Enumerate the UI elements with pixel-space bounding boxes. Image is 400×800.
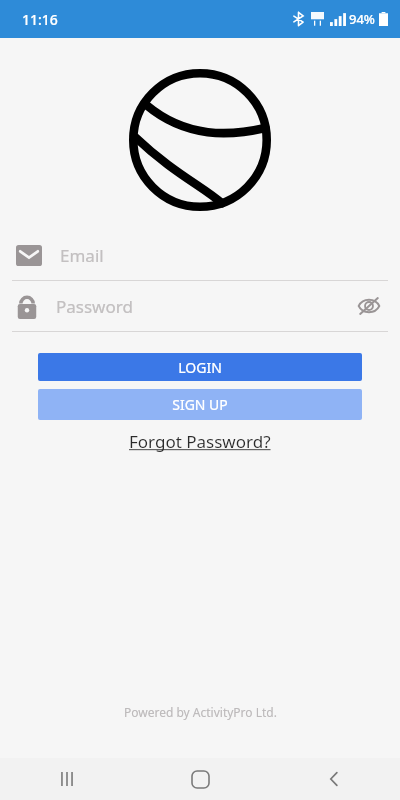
button[interactable]: Show password [352, 289, 386, 323]
button[interactable]: Email [0, 230, 400, 280]
button[interactable]: Recent apps [0, 758, 134, 800]
button[interactable]: LOGIN [38, 353, 362, 381]
button[interactable]: SIGN UP [38, 389, 362, 420]
staticText: Forgot Password? [129, 430, 271, 453]
button[interactable]: Forgot Password? [121, 428, 279, 455]
staticText: Email [60, 244, 104, 267]
staticText: Powered by ActivityPro Ltd. [124, 704, 277, 720]
staticText: LOGIN [178, 358, 222, 377]
staticText: SIGN UP [172, 395, 228, 414]
staticText: 94% [349, 10, 375, 28]
staticText: Password [56, 295, 133, 318]
button[interactable]: Back [267, 758, 400, 800]
staticText: 11:16 [22, 10, 58, 29]
button[interactable]: Password [0, 281, 400, 331]
button[interactable]: Home [134, 758, 267, 800]
